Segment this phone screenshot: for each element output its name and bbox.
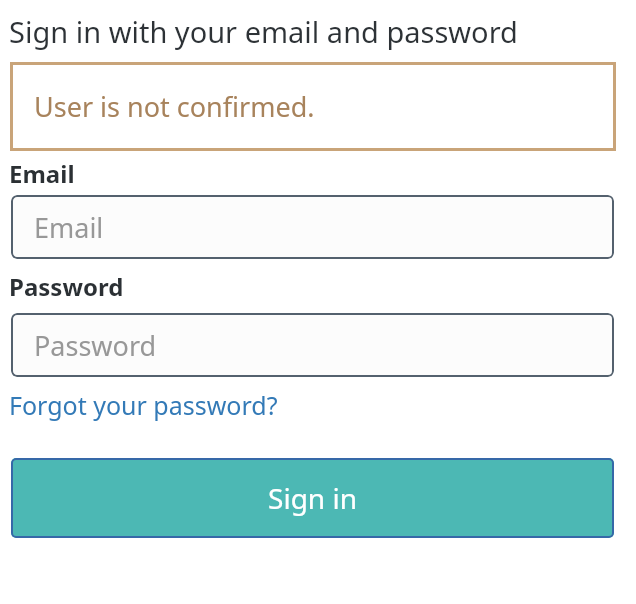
button[interactable]: Email (11, 195, 614, 259)
staticText: Sign in (268, 479, 357, 517)
button[interactable]: Password (11, 313, 614, 377)
staticText: Forgot your password? (9, 388, 278, 422)
staticText: Email (9, 157, 75, 190)
staticText: Sign in with your email and password (9, 12, 518, 51)
button[interactable]: Forgot your password? (9, 388, 278, 422)
button[interactable]: Sign in (11, 458, 614, 538)
staticText: User is not confirmed. (34, 88, 315, 125)
staticText: Password (9, 270, 124, 303)
button[interactable]: User is not confirmed. (10, 62, 616, 151)
staticText: Password (34, 327, 157, 364)
staticText: Email (34, 209, 104, 246)
